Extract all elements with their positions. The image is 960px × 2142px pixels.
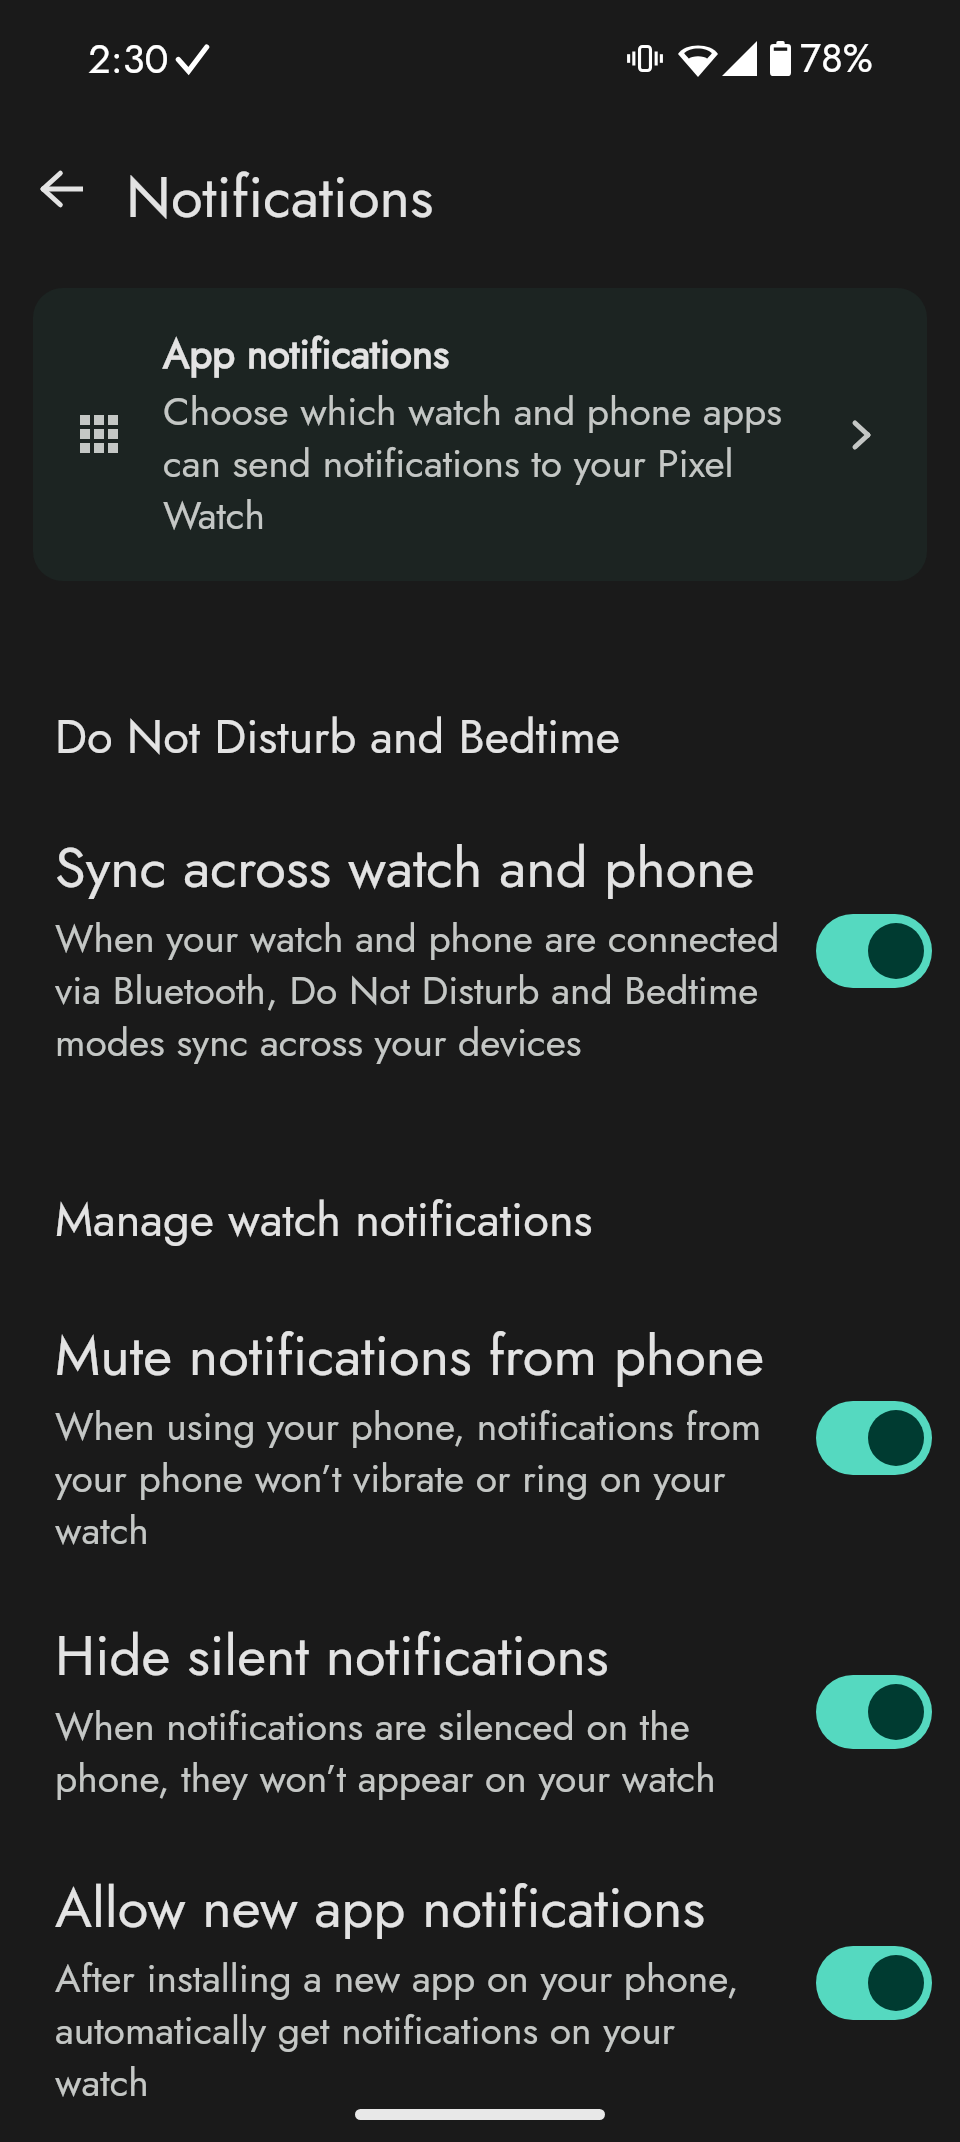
staticText: Manage watch notifications [55, 1186, 593, 1254]
staticText: After installing a new app on your phone… [55, 1950, 739, 2110]
button[interactable]: Sync across watch and phone [816, 914, 932, 988]
staticText: Mute notifications from phone [55, 1315, 765, 1396]
staticText: Do Not Disturb and Bedtime [55, 703, 621, 771]
button[interactable]: Sync across watch and phone [0, 827, 960, 1070]
staticText: When notifications are silenced on the p… [55, 1698, 716, 1806]
staticText: Choose which watch and phone apps can se… [163, 383, 783, 543]
staticText: Hide silent notifications [55, 1615, 609, 1696]
staticText: Allow new app notifications [55, 1867, 705, 1948]
staticText: Sync across watch and phone [55, 827, 755, 908]
button[interactable]: Allow new app notifications [816, 1946, 932, 2020]
staticText: When using your phone, notifications fro… [55, 1398, 762, 1558]
button[interactable]: App notifications [33, 288, 927, 581]
staticText: When your watch and phone are connected … [55, 910, 780, 1070]
button[interactable]: Back [20, 130, 104, 214]
button[interactable]: Hide silent notifications [0, 1615, 960, 1806]
button[interactable]: Mute notifications from phone [816, 1401, 932, 1475]
button[interactable]: Mute notifications from phone [0, 1315, 960, 1558]
button[interactable]: Hide silent notifications [816, 1675, 932, 1749]
button[interactable]: Allow new app notifications [0, 1867, 960, 2110]
staticText: 2:30 [88, 30, 169, 88]
staticText: 78% [800, 29, 873, 87]
staticText: Notifications [126, 155, 434, 239]
staticText: App notifications [163, 325, 449, 383]
